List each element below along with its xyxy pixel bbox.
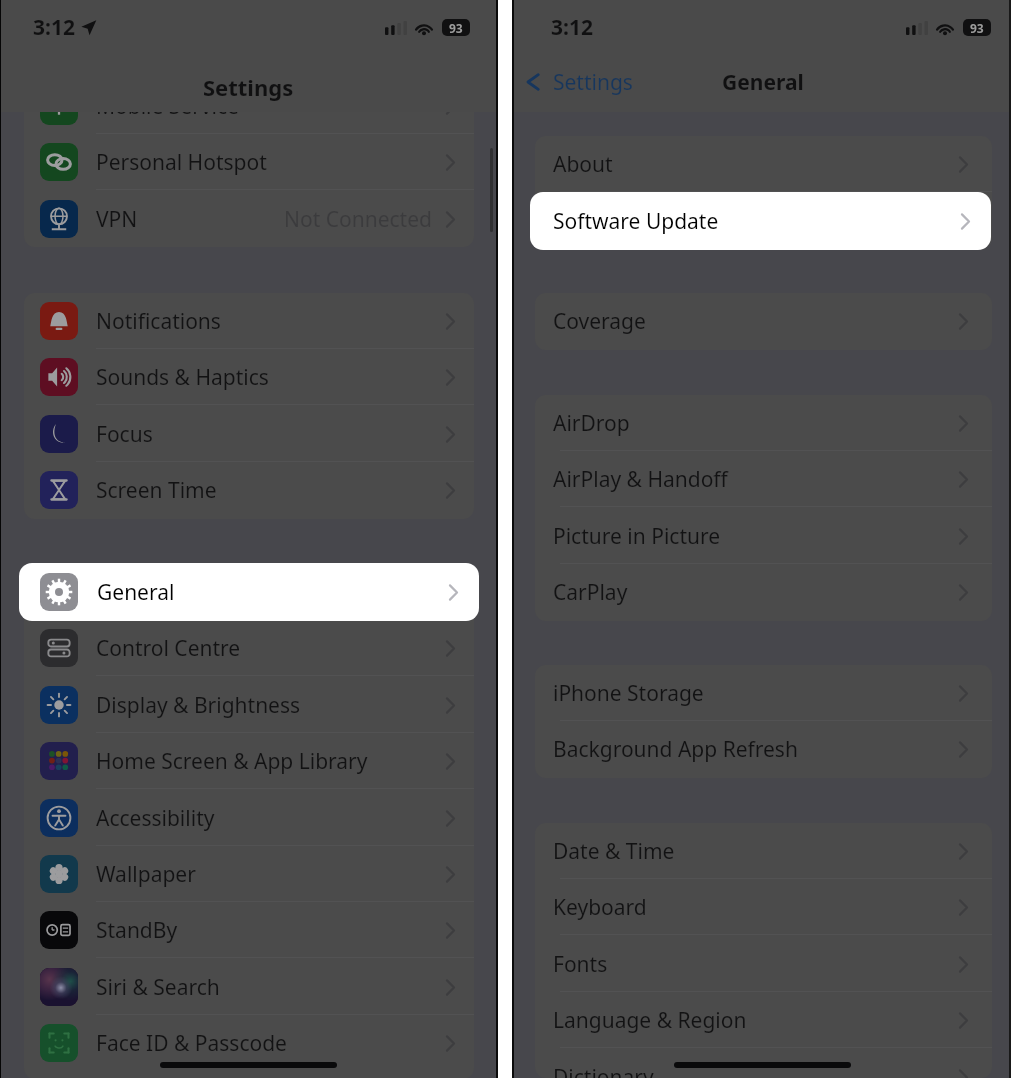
staticText: 3:12: [33, 13, 75, 42]
staticText: Settings: [203, 72, 294, 102]
staticText: Date & Time: [553, 837, 675, 866]
staticText: Wallpaper: [96, 860, 196, 889]
staticText: Picture in Picture: [553, 522, 721, 551]
button[interactable]: Face ID & Passcode: [24, 1015, 474, 1071]
staticText: Software Update: [553, 206, 719, 235]
button[interactable]: Settings: [526, 66, 633, 98]
button[interactable]: Background App Refresh: [535, 721, 992, 777]
button[interactable]: Fonts: [535, 936, 992, 992]
staticText: General: [722, 68, 804, 97]
staticText: VPN: [96, 205, 138, 234]
staticText: Background App Refresh: [553, 735, 798, 764]
staticText: Notifications: [96, 307, 221, 336]
button[interactable]: Focus: [24, 406, 474, 462]
button[interactable]: Software Update: [530, 192, 991, 250]
button[interactable]: AirPlay & Handoff: [535, 451, 992, 507]
button[interactable]: Mobile Service: [24, 112, 474, 134]
staticText: Siri & Search: [96, 973, 220, 1002]
staticText: General: [97, 578, 175, 607]
staticText: Display & Brightness: [96, 691, 301, 720]
button[interactable]: Wallpaper: [24, 846, 474, 902]
staticText: AirDrop: [553, 409, 630, 438]
staticText: Fonts: [553, 950, 608, 979]
staticText: Not Connected: [284, 205, 432, 234]
staticText: iPhone Storage: [553, 679, 704, 708]
staticText: CarPlay: [553, 578, 628, 607]
staticText: 93: [970, 20, 984, 36]
button[interactable]: CarPlay: [535, 564, 992, 620]
staticText: General: [96, 578, 174, 607]
button[interactable]: Coverage: [535, 293, 992, 349]
staticText: Face ID & Passcode: [96, 1029, 287, 1058]
staticText: Sounds & Haptics: [96, 363, 269, 392]
staticText: Coverage: [553, 307, 646, 336]
button[interactable]: iPhone Storage: [535, 665, 992, 721]
button[interactable]: Software Update: [535, 192, 992, 248]
staticText: Screen Time: [96, 476, 217, 505]
staticText: About: [553, 150, 613, 179]
button[interactable]: Dictionary: [535, 1049, 992, 1078]
staticText: Settings: [553, 68, 633, 97]
button[interactable]: Control Centre: [24, 620, 474, 676]
button[interactable]: Home Screen & App Library: [24, 733, 474, 789]
button[interactable]: Display & Brightness: [24, 677, 474, 733]
staticText: Software Update: [553, 207, 719, 236]
button[interactable]: Notifications: [24, 293, 474, 349]
button[interactable]: Screen Time: [24, 462, 474, 518]
staticText: Language & Region: [553, 1006, 747, 1035]
staticText: Accessibility: [96, 804, 215, 833]
button[interactable]: Accessibility: [24, 790, 474, 846]
button[interactable]: Keyboard: [535, 879, 992, 935]
button[interactable]: About: [535, 136, 992, 192]
staticText: Mobile Service: [96, 112, 239, 121]
staticText: Control Centre: [96, 634, 241, 663]
staticText: AirPlay & Handoff: [553, 465, 728, 494]
button[interactable]: Sounds & Haptics: [24, 349, 474, 405]
staticText: Home Screen & App Library: [96, 747, 368, 776]
button[interactable]: Siri & Search: [24, 959, 474, 1015]
button[interactable]: Language & Region: [535, 992, 992, 1048]
button[interactable]: Picture in Picture: [535, 508, 992, 564]
staticText: 93: [449, 20, 463, 36]
button[interactable]: StandBy: [24, 902, 474, 958]
staticText: 3:12: [551, 13, 593, 42]
button[interactable]: General: [24, 564, 474, 620]
staticText: Keyboard: [553, 893, 647, 922]
staticText: Personal Hotspot: [96, 148, 267, 177]
button[interactable]: Personal Hotspot: [24, 134, 474, 190]
staticText: Focus: [96, 420, 153, 449]
staticText: StandBy: [96, 916, 178, 945]
button[interactable]: General: [19, 563, 479, 621]
button[interactable]: VPN: [24, 191, 474, 247]
button[interactable]: AirDrop: [535, 395, 992, 451]
staticText: Dictionary: [553, 1063, 654, 1078]
button[interactable]: Date & Time: [535, 823, 992, 879]
